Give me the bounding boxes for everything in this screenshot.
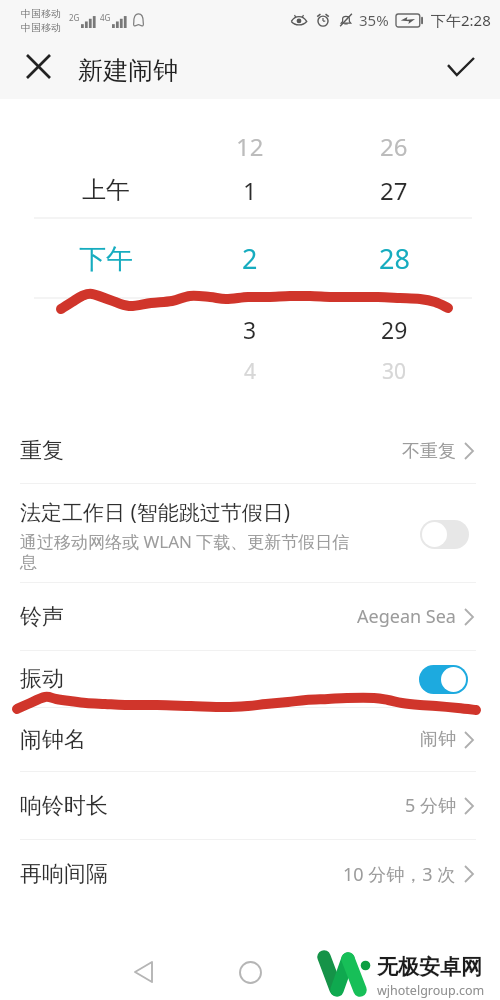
button[interactable]: Close — [16, 44, 61, 89]
button[interactable]: Switch on — [419, 665, 468, 694]
button[interactable]: 重复 — [0, 419, 500, 483]
staticText: 12 — [236, 130, 264, 163]
staticText: 下午2:28 — [431, 10, 491, 30]
button[interactable]: 法定工作日 (智能跳过节假日) — [0, 484, 500, 582]
button[interactable]: 铃声 — [0, 583, 500, 650]
staticText: 振动 — [20, 665, 64, 693]
staticText: 响铃时长 — [20, 792, 108, 820]
button[interactable]: Switch off — [420, 520, 469, 549]
staticText: 通过移动网络或 WLAN 下载、更新节假日信息 — [20, 530, 350, 573]
staticText: 4 — [244, 357, 257, 386]
staticText: 中国移动 — [21, 7, 61, 20]
staticText: 2 — [242, 240, 258, 277]
staticText: 28 — [379, 240, 410, 277]
staticText: 35% — [359, 10, 389, 30]
button[interactable]: Confirm — [438, 44, 483, 89]
staticText: 2G — [69, 12, 80, 23]
staticText: 4G — [100, 12, 111, 23]
staticText: 10 分钟，3 次 — [343, 862, 456, 887]
staticText: Aegean Sea — [357, 604, 456, 629]
button[interactable]: Back — [118, 947, 168, 997]
staticText: 再响间隔 — [20, 860, 108, 888]
button[interactable]: 响铃时长 — [0, 772, 500, 839]
button[interactable]: 振动 — [0, 651, 500, 707]
staticText: 30 — [382, 357, 407, 386]
staticText: 中国移动 — [21, 21, 61, 34]
staticText: 闹钟 — [420, 728, 456, 751]
staticText: 不重复 — [402, 440, 456, 463]
staticText: 无极安卓网 — [377, 954, 482, 980]
staticText: 5 分钟 — [405, 793, 456, 818]
staticText: 重复 — [20, 437, 64, 465]
staticText: 3 — [243, 314, 257, 345]
button[interactable]: Home — [225, 947, 275, 997]
staticText: 下午 — [79, 242, 133, 276]
staticText: 法定工作日 (智能跳过节假日) — [20, 498, 291, 527]
staticText: 1 — [243, 174, 257, 207]
staticText: wjhotelgroup.com — [377, 982, 485, 999]
button[interactable]: 闹钟名 — [0, 708, 500, 771]
staticText: 铃声 — [20, 603, 64, 631]
staticText: 新建闹钟 — [78, 55, 178, 86]
staticText: 26 — [380, 130, 408, 163]
button[interactable]: 再响间隔 — [0, 840, 500, 908]
staticText: 27 — [380, 174, 408, 207]
staticText: 上午 — [82, 175, 130, 205]
staticText: 闹钟名 — [20, 726, 86, 754]
staticText: 29 — [381, 314, 408, 345]
